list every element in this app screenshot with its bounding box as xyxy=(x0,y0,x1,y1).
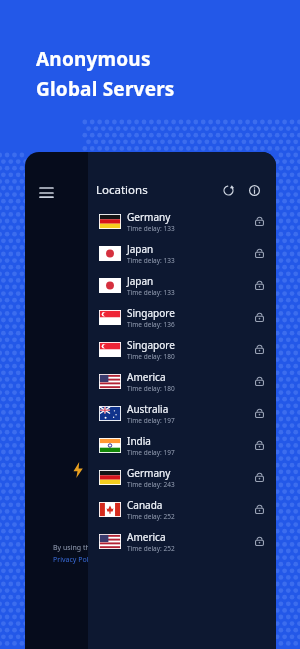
staticText: Time delay: 197 xyxy=(127,416,175,425)
staticText: Japan xyxy=(127,242,154,256)
staticText: Singapore xyxy=(127,306,175,320)
staticText: Anonymous xyxy=(36,46,151,72)
staticText: Time delay: 180 xyxy=(127,352,175,361)
staticText: Time delay: 243 xyxy=(127,480,175,489)
button[interactable]: Germany xyxy=(88,461,276,493)
button[interactable]: Canada xyxy=(88,493,276,525)
staticText: Time delay: 252 xyxy=(127,512,175,521)
button[interactable]: Info xyxy=(244,180,264,200)
button[interactable]: Singapore xyxy=(88,333,276,365)
staticText: Time delay: 180 xyxy=(127,384,175,393)
staticText: By using this app you agree xyxy=(53,543,144,553)
button[interactable]: Japan xyxy=(88,237,276,269)
staticText: Privacy Policy xyxy=(53,555,98,565)
staticText: Global Servers xyxy=(36,76,175,102)
staticText: Germany xyxy=(127,466,171,480)
staticText: America xyxy=(127,370,166,384)
staticText: Time delay: 133 xyxy=(127,224,175,233)
button[interactable]: America xyxy=(88,525,276,557)
button[interactable]: Australia xyxy=(88,397,276,429)
staticText: India xyxy=(127,434,151,448)
staticText: Canada xyxy=(127,498,163,512)
staticText: Time delay: 133 xyxy=(127,256,175,265)
button[interactable]: America xyxy=(88,365,276,397)
button[interactable]: Singapore xyxy=(88,301,276,333)
button[interactable]: India xyxy=(88,429,276,461)
staticText: Australia xyxy=(127,402,169,416)
button[interactable]: Germany xyxy=(88,205,276,237)
staticText: Time delay: 133 xyxy=(127,288,175,297)
button[interactable]: Menu xyxy=(31,178,61,208)
staticText: Time delay: 197 xyxy=(127,448,175,457)
button[interactable]: Japan xyxy=(88,269,276,301)
staticText: Locations xyxy=(96,182,148,198)
staticText: Japan xyxy=(127,274,154,288)
staticText: Time delay: 252 xyxy=(127,544,175,553)
staticText: America xyxy=(127,530,166,544)
button[interactable]: Refresh xyxy=(218,180,238,200)
staticText: Germany xyxy=(127,210,171,224)
staticText: Singapore xyxy=(127,338,175,352)
staticText: Time delay: 136 xyxy=(127,320,175,329)
